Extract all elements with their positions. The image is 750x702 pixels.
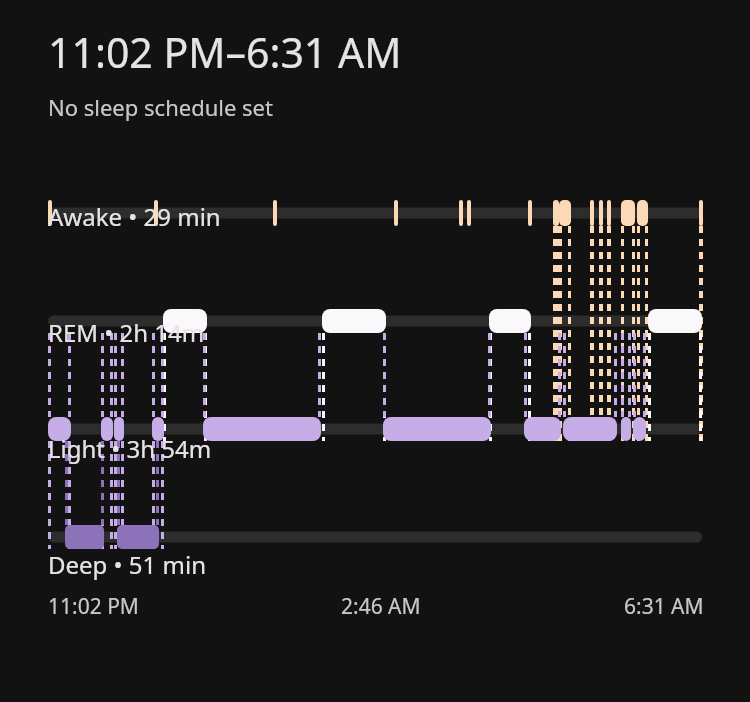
staticText: 2:46 AM: [341, 592, 421, 621]
staticText: Awake • 29 min: [48, 200, 221, 233]
staticText: Light • 3h 54m: [48, 432, 212, 465]
staticText: 6:31 AM: [624, 592, 704, 621]
staticText: 11:02 PM–6:31 AM: [48, 24, 402, 80]
staticText: 11:02 PM: [48, 592, 139, 621]
staticText: REM • 2h 14m: [48, 316, 205, 349]
staticText: No sleep schedule set: [48, 92, 273, 122]
button[interactable]: [0, 122, 750, 592]
staticText: Deep • 51 min: [48, 548, 207, 581]
